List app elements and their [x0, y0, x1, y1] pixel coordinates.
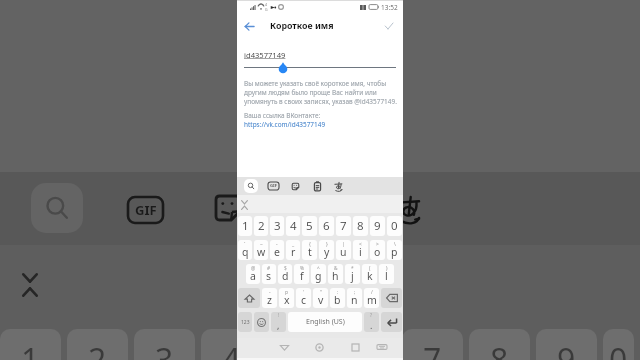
staticText: Вы можете указать своё короткое имя, что… — [244, 79, 402, 106]
button[interactable]: $ — [278, 264, 292, 284]
button[interactable]: 6 — [319, 216, 334, 236]
staticText: Ваша ссылка ВКонтакте: — [244, 111, 321, 120]
button[interactable]: Hide keyboard — [373, 338, 391, 356]
button[interactable]: % — [294, 264, 309, 284]
staticText: 9 — [557, 338, 576, 360]
staticText: s — [266, 269, 272, 283]
staticText: & — [334, 265, 338, 272]
button[interactable]: Enter — [381, 312, 402, 332]
button[interactable]: \ — [387, 240, 402, 260]
button[interactable]: Comma — [271, 312, 286, 332]
staticText: i — [359, 245, 362, 259]
button[interactable]: Emoji — [254, 312, 269, 332]
button[interactable]: 1 — [238, 216, 252, 236]
staticText: % — [300, 265, 304, 272]
button[interactable]: Home — [310, 338, 328, 356]
staticText: x — [284, 293, 290, 307]
staticText: / — [371, 289, 373, 296]
staticText: 6 — [323, 218, 330, 234]
button[interactable]: ` — [238, 240, 252, 260]
button[interactable]: ) — [379, 264, 394, 284]
button[interactable]: # — [262, 264, 276, 284]
button[interactable]: Backspace — [381, 288, 402, 308]
staticText: u — [340, 245, 347, 259]
staticText: y — [324, 245, 330, 259]
staticText: m — [367, 293, 377, 307]
button[interactable]: " — [313, 288, 328, 308]
button[interactable]: Back — [275, 338, 293, 356]
staticText: t — [308, 245, 312, 259]
staticText: d — [282, 269, 289, 283]
button[interactable]: { — [302, 240, 317, 260]
staticText: ' — [303, 289, 305, 296]
button[interactable]: p — [279, 288, 294, 308]
button[interactable]: 8 — [353, 216, 368, 236]
staticText: e — [274, 245, 280, 259]
button[interactable]: Translate — [332, 179, 346, 193]
button[interactable]: 2 — [254, 216, 268, 236]
staticText: 7 — [340, 218, 347, 234]
button[interactable]: * — [345, 264, 360, 284]
button[interactable]: Clipboard — [310, 179, 324, 193]
button[interactable]: 3 — [270, 216, 284, 236]
staticText: | — [342, 241, 345, 248]
staticText: n — [351, 293, 358, 307]
button[interactable]: - — [270, 240, 284, 260]
staticText: \ — [394, 241, 396, 248]
staticText: ~ — [260, 241, 263, 248]
button[interactable]: Recents — [346, 338, 364, 356]
staticText: r — [291, 245, 296, 259]
button[interactable]: | — [336, 240, 351, 260]
button[interactable]: / — [364, 288, 379, 308]
button[interactable]: ~ — [254, 240, 268, 260]
staticText: ^ — [317, 265, 320, 272]
staticText: f — [300, 269, 304, 283]
button[interactable]: 0 — [387, 216, 402, 236]
staticText: 8 — [490, 338, 509, 360]
button[interactable]: > — [370, 240, 385, 260]
button[interactable]: Shift — [238, 288, 260, 308]
button[interactable]: Symbols — [238, 312, 252, 332]
staticText: ( — [369, 265, 371, 272]
staticText: a — [250, 269, 256, 283]
staticText: * — [351, 265, 354, 272]
button[interactable]: ; — [347, 288, 362, 308]
staticText: . — [370, 319, 373, 331]
button[interactable]: ^ — [311, 264, 326, 284]
button[interactable]: } — [319, 240, 334, 260]
staticText: b — [334, 293, 341, 307]
staticText: @ — [251, 265, 256, 272]
button[interactable]: - — [262, 288, 277, 308]
button[interactable]: GIF — [266, 179, 280, 193]
button[interactable]: Period — [364, 312, 379, 332]
button[interactable]: 5 — [302, 216, 317, 236]
button[interactable]: https://vk.com/id43577149 — [244, 120, 326, 129]
button[interactable]: ' — [296, 288, 311, 308]
staticText: 4 — [290, 218, 297, 234]
button[interactable]: < — [353, 240, 368, 260]
staticText: " — [320, 289, 322, 296]
button[interactable]: Back — [237, 14, 261, 38]
staticText: 5 — [306, 218, 313, 234]
button[interactable]: @ — [246, 264, 260, 284]
staticText: ; — [354, 289, 356, 296]
button[interactable]: 4 — [286, 216, 300, 236]
staticText: 4 — [265, 2, 268, 7]
staticText: : — [337, 289, 339, 296]
button[interactable]: Save — [377, 14, 401, 38]
staticText: p — [391, 245, 398, 259]
button[interactable]: : — [330, 288, 345, 308]
staticText: 1 — [242, 218, 249, 234]
button[interactable]: ( — [362, 264, 377, 284]
staticText: 6 — [356, 338, 375, 360]
button[interactable]: _ — [286, 240, 300, 260]
button[interactable]: Search — [244, 179, 258, 193]
staticText: - — [269, 289, 271, 296]
button[interactable]: & — [328, 264, 343, 284]
staticText: # — [267, 265, 271, 272]
button[interactable]: 7 — [336, 216, 351, 236]
button[interactable]: English (US) — [288, 312, 362, 332]
button[interactable]: Stickers — [288, 179, 302, 193]
staticText: { — [309, 241, 311, 248]
button[interactable]: 9 — [370, 216, 385, 236]
